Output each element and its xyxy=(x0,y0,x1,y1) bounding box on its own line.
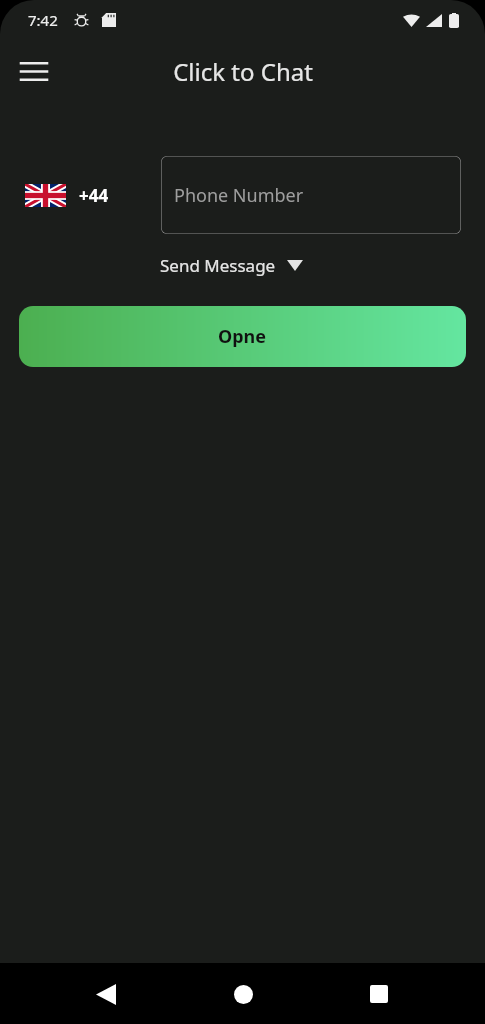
button[interactable]: Send Message xyxy=(160,254,303,277)
button[interactable]: Recent apps xyxy=(349,964,409,1024)
other: United Kingdom country code xyxy=(25,184,66,207)
staticText: Phone Number xyxy=(174,183,304,208)
button[interactable]: Back xyxy=(76,964,136,1024)
staticText: Send Message xyxy=(160,254,276,277)
button[interactable]: Phone Number xyxy=(161,156,461,234)
button[interactable]: Home xyxy=(213,964,273,1024)
staticText: 7:42 xyxy=(28,10,58,30)
button[interactable]: Opne xyxy=(19,306,466,367)
staticText: Opne xyxy=(218,324,267,349)
button[interactable]: Open navigation menu xyxy=(10,47,58,95)
staticText: +44 xyxy=(79,184,109,207)
staticText: Click to Chat xyxy=(173,55,313,88)
button[interactable]: United Kingdom country code xyxy=(25,184,109,207)
